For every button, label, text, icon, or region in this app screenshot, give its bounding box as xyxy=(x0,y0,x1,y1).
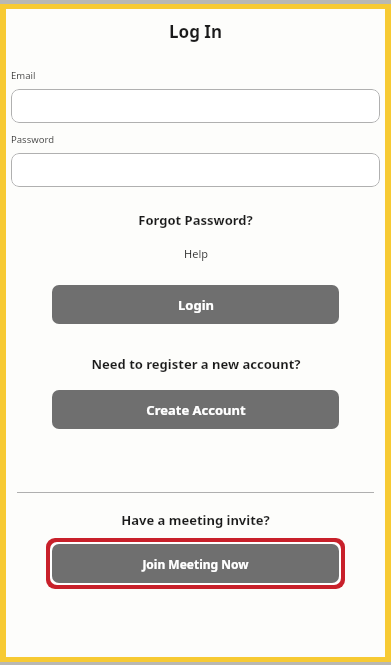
staticText: Password xyxy=(11,133,54,146)
staticText: Help xyxy=(184,246,208,261)
staticText: Login xyxy=(178,296,214,314)
staticText: Forgot Password? xyxy=(138,211,253,229)
button[interactable]: Forgot Password? xyxy=(11,211,380,229)
button[interactable] xyxy=(11,89,380,123)
staticText: Email xyxy=(11,69,36,82)
staticText: Need to register a new account? xyxy=(91,355,301,373)
button[interactable]: Login xyxy=(52,285,339,324)
staticText: Have a meeting invite? xyxy=(121,511,270,529)
button[interactable]: Join Meeting Now xyxy=(52,544,339,583)
button[interactable]: Help xyxy=(11,246,380,261)
button[interactable]: Create Account xyxy=(52,390,339,429)
staticText: Join Meeting Now xyxy=(142,556,249,572)
staticText: Log In xyxy=(169,20,222,43)
button[interactable] xyxy=(11,153,380,187)
staticText: Create Account xyxy=(146,401,246,419)
